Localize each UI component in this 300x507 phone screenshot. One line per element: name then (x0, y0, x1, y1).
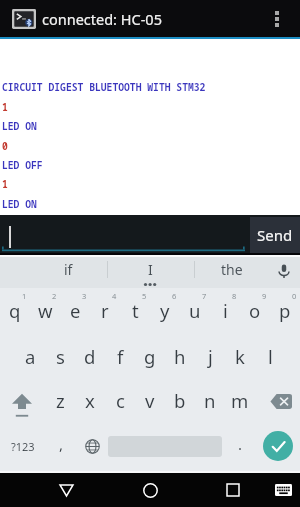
button[interactable]: g (135, 336, 165, 381)
button[interactable]: q (0, 288, 30, 336)
staticText: u (189, 298, 201, 323)
button[interactable]: v (135, 381, 165, 424)
staticText: j (208, 344, 213, 369)
button[interactable]: . (225, 424, 255, 468)
staticText: 9 (262, 291, 267, 301)
staticText: f (117, 344, 124, 369)
staticText: l (268, 344, 273, 369)
button[interactable]: s (45, 336, 75, 381)
button[interactable]: Recent apps (211, 473, 255, 507)
button[interactable]: h (165, 336, 195, 381)
staticText: i (223, 298, 228, 323)
button[interactable]: l (255, 336, 285, 381)
staticText: 5 (142, 291, 147, 301)
button[interactable]: Send (250, 217, 300, 253)
button[interactable]: w (30, 288, 60, 336)
staticText: x (85, 388, 95, 413)
button[interactable]: e (60, 288, 90, 336)
button[interactable]: Enter (255, 424, 300, 468)
button[interactable]: a (15, 336, 45, 381)
button[interactable]: x (75, 381, 105, 424)
button[interactable]: Shift (0, 381, 45, 424)
staticText: a (25, 344, 36, 369)
button[interactable]: Back (44, 473, 88, 507)
staticText: r (101, 298, 109, 323)
button[interactable]: k (225, 336, 255, 381)
staticText: 4 (112, 291, 117, 301)
staticText: if (64, 260, 73, 279)
staticText: s (56, 344, 65, 369)
staticText: k (235, 344, 245, 369)
button[interactable]: f (105, 336, 135, 381)
button[interactable]: m (225, 381, 255, 424)
staticText: q (9, 298, 21, 323)
button[interactable]: i (210, 288, 240, 336)
button[interactable]: t (120, 288, 150, 336)
button[interactable]: r (90, 288, 120, 336)
staticText: I (148, 260, 153, 279)
staticText: h (174, 344, 186, 369)
button[interactable]: ?123 (0, 424, 46, 468)
button[interactable]: p (270, 288, 300, 336)
staticText: e (70, 298, 81, 323)
staticText: 6 (172, 291, 177, 301)
staticText: the (221, 260, 243, 279)
staticText: LED ON (2, 120, 37, 133)
staticText: 0 (292, 291, 297, 301)
staticText: v (145, 388, 155, 413)
staticText: t (132, 298, 139, 323)
button[interactable]: Space (108, 424, 222, 468)
staticText: p (279, 298, 291, 323)
button[interactable]: More options (261, 0, 293, 37)
staticText: 1 (2, 101, 8, 114)
button[interactable]: d (75, 336, 105, 381)
staticText: connected: HC-05 (42, 9, 162, 29)
staticText: d (84, 344, 96, 369)
button[interactable]: c (105, 381, 135, 424)
button[interactable]: y (150, 288, 180, 336)
staticText: 0 (2, 140, 8, 153)
staticText: 1 (2, 178, 8, 191)
button[interactable]: if (29, 257, 107, 288)
staticText: CIRCUIT DIGEST BLUETOOTH WITH STM32 (2, 81, 206, 94)
button[interactable]: I (107, 257, 194, 288)
staticText: z (56, 388, 65, 413)
staticText: 2 (52, 291, 57, 301)
staticText: 1 (22, 291, 27, 301)
button[interactable]: b (165, 381, 195, 424)
button[interactable] (0, 215, 300, 253)
button[interactable]: Delete (255, 381, 300, 424)
staticText: Send (257, 225, 293, 245)
staticText: b (174, 388, 186, 413)
button[interactable]: z (45, 381, 75, 424)
button[interactable]: Voice input (264, 255, 300, 286)
staticText: n (204, 388, 216, 413)
staticText: 7 (202, 291, 207, 301)
staticText: 8 (232, 291, 237, 301)
staticText: LED OFF (2, 159, 43, 172)
button[interactable]: n (195, 381, 225, 424)
staticText: c (116, 388, 125, 413)
staticText: , (59, 434, 64, 454)
button[interactable]: the (194, 257, 270, 288)
button[interactable]: j (195, 336, 225, 381)
button[interactable]: u (180, 288, 210, 336)
staticText: g (144, 344, 156, 369)
staticText: LED ON (2, 198, 37, 211)
staticText: m (231, 388, 249, 413)
staticText: 3 (82, 291, 87, 301)
button[interactable]: Change keyboard language (77, 424, 108, 468)
staticText: ?123 (11, 439, 35, 454)
button[interactable]: , (46, 424, 77, 468)
button[interactable]: Hide keyboard (261, 473, 300, 507)
staticText: y (160, 298, 170, 323)
button[interactable]: Home (128, 473, 172, 507)
button[interactable]: o (240, 288, 270, 336)
staticText: w (38, 298, 53, 323)
staticText: o (249, 298, 261, 323)
staticText: . (238, 434, 243, 454)
